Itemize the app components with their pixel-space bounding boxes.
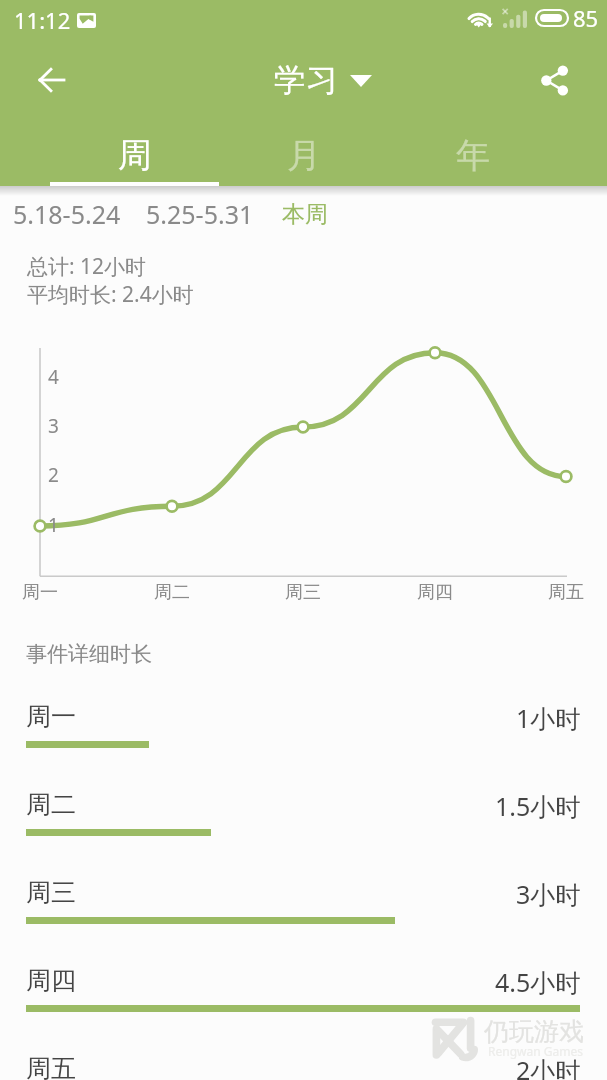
- staticText: 4: [48, 364, 59, 390]
- button[interactable]: 周四: [0, 963, 607, 1051]
- staticText: 学习: [274, 60, 338, 100]
- button[interactable]: 周二: [0, 787, 607, 875]
- staticText: 周一: [26, 701, 76, 732]
- button[interactable]: Share: [531, 56, 579, 104]
- staticText: 仍玩游戏: [484, 1016, 584, 1047]
- staticText: 周: [118, 134, 152, 177]
- staticText: 周二: [132, 581, 212, 604]
- staticText: 周四: [395, 581, 475, 604]
- staticText: 周三: [263, 581, 343, 604]
- staticText: 周五: [526, 581, 606, 604]
- staticText: 周三: [26, 877, 76, 908]
- staticText: 1小时: [516, 701, 581, 735]
- staticText: 年: [456, 134, 490, 177]
- button[interactable]: Back: [28, 56, 76, 104]
- staticText: 3: [48, 413, 59, 439]
- button[interactable]: 周三: [0, 875, 607, 963]
- button[interactable]: 周一: [0, 699, 607, 787]
- button[interactable]: 年: [388, 120, 557, 182]
- staticText: 2: [48, 462, 59, 488]
- button[interactable]: 周: [50, 120, 219, 182]
- staticText: Rengwan Games: [488, 1043, 583, 1059]
- staticText: 周五: [26, 1053, 76, 1080]
- staticText: 85: [573, 3, 599, 33]
- staticText: 1: [48, 512, 59, 538]
- staticText: 2小时: [516, 1053, 581, 1080]
- button[interactable]: 月: [219, 120, 388, 182]
- staticText: 周二: [26, 789, 76, 820]
- staticText: 3小时: [516, 877, 581, 911]
- button[interactable]: 本周: [282, 200, 328, 229]
- button[interactable]: 5.18-5.24: [13, 197, 121, 231]
- staticText: 周四: [26, 965, 76, 996]
- staticText: 月: [287, 134, 321, 177]
- staticText: 事件详细时长: [26, 641, 152, 667]
- button[interactable]: 5.25-5.31: [146, 197, 254, 231]
- staticText: 4.5小时: [495, 965, 581, 999]
- button[interactable]: 周五: [0, 1051, 607, 1080]
- staticText: 总计: 12小时: [27, 252, 147, 281]
- staticText: 平均时长: 2.4小时: [27, 280, 194, 309]
- staticText: 周一: [0, 581, 80, 604]
- staticText: 1.5小时: [495, 789, 581, 823]
- button[interactable]: 学习: [274, 60, 372, 100]
- staticText: 11:12: [14, 5, 71, 35]
